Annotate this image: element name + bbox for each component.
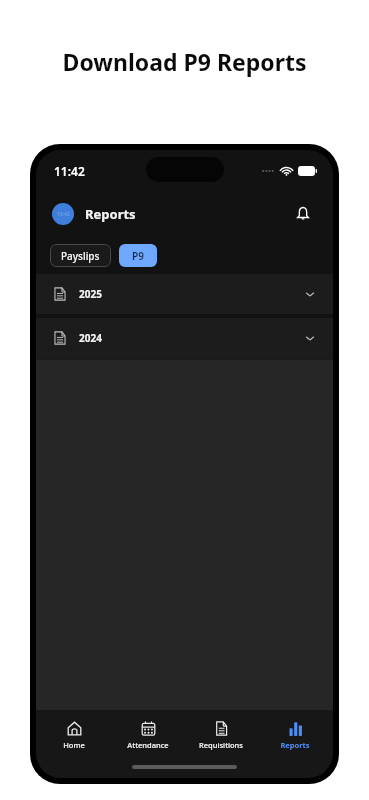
button[interactable]: Requisitions [185, 721, 257, 750]
button[interactable]: Home [38, 721, 110, 750]
staticText: Payslips [61, 249, 100, 263]
staticText: 11:42 [54, 163, 85, 179]
button[interactable]: 2024 [36, 318, 333, 358]
button[interactable]: Reports [259, 721, 331, 750]
button[interactable]: Payslips [50, 244, 111, 267]
staticText: 2025 [79, 287, 102, 301]
staticText: P9 [132, 249, 144, 263]
staticText: Home [63, 740, 85, 750]
button[interactable]: P9 [119, 244, 157, 267]
button[interactable]: Profile [52, 203, 74, 225]
staticText: 19:42 [57, 211, 70, 218]
staticText: Reports [85, 205, 136, 223]
staticText: 2024 [79, 331, 102, 345]
staticText: Download P9 Reports [0, 46, 369, 77]
button[interactable]: Notifications [289, 200, 317, 228]
staticText: Reports [280, 740, 310, 750]
button[interactable]: 2025 [36, 274, 333, 314]
staticText: Attendance [127, 740, 169, 750]
staticText: Requisitions [199, 740, 243, 750]
button[interactable]: Attendance [112, 721, 184, 750]
